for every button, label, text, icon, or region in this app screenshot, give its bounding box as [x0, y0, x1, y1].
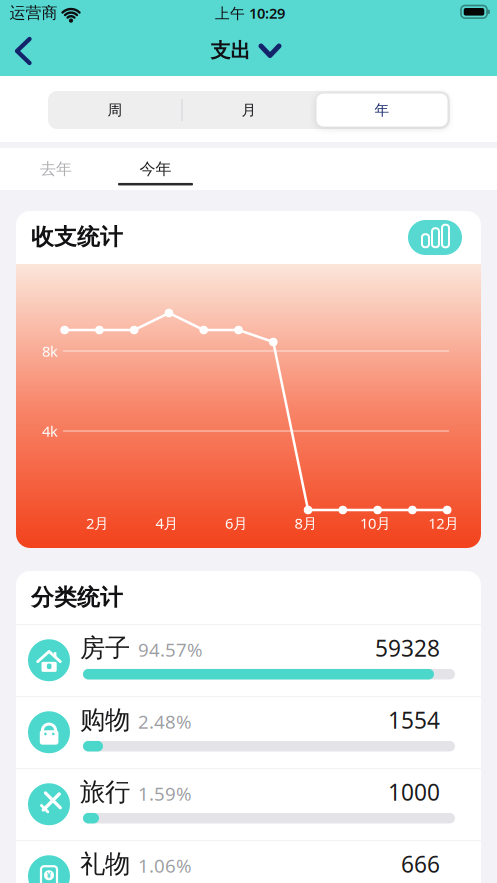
staticText: 94.57% — [138, 637, 203, 662]
button[interactable]: 月 — [182, 91, 316, 129]
staticText: 2月 — [86, 513, 109, 533]
button[interactable] — [8, 33, 38, 69]
staticText: 房子 — [80, 632, 130, 663]
staticText: 1554 — [388, 705, 440, 735]
button[interactable]: ¥ — [16, 840, 481, 883]
staticText: 4月 — [155, 513, 178, 533]
staticText: 上午 10:29 — [215, 3, 285, 23]
staticText: 8月 — [295, 513, 318, 533]
staticText: 666 — [401, 849, 440, 879]
staticText: 礼物 — [80, 848, 130, 879]
staticText: 分类统计 — [31, 584, 123, 611]
staticText: 10月 — [360, 513, 391, 533]
staticText: 59328 — [375, 633, 440, 663]
staticText: 6月 — [225, 513, 248, 533]
staticText: ¥ — [46, 870, 51, 880]
staticText: 1.59% — [138, 781, 192, 806]
staticText: 12月 — [428, 513, 459, 533]
staticText: 1000 — [388, 777, 440, 807]
button[interactable]: 年 — [315, 91, 449, 129]
staticText: 今年 — [139, 159, 171, 179]
staticText: 运营商 — [9, 3, 57, 23]
staticText: 2.48% — [138, 709, 192, 734]
staticText: 月 — [241, 101, 256, 119]
staticText: 支出 — [210, 38, 250, 63]
staticText: 收支统计 — [31, 223, 123, 251]
button[interactable]: 旅行 — [16, 768, 481, 840]
button[interactable]: 支出 — [211, 32, 283, 69]
staticText: 年 — [374, 101, 389, 119]
staticText: 去年 — [40, 159, 72, 179]
button[interactable]: 今年 — [106, 148, 205, 190]
button[interactable]: 购物 — [16, 696, 481, 768]
button[interactable]: 房子 — [16, 624, 481, 696]
button[interactable] — [408, 220, 462, 255]
button[interactable]: 去年 — [6, 148, 105, 190]
staticText: 旅行 — [80, 776, 130, 807]
staticText: 购物 — [80, 704, 130, 735]
staticText: 8k — [42, 341, 58, 361]
button[interactable]: 周 — [48, 91, 182, 129]
staticText: 4k — [42, 421, 58, 441]
staticText: 周 — [107, 101, 122, 119]
staticText: 1.06% — [138, 853, 192, 878]
